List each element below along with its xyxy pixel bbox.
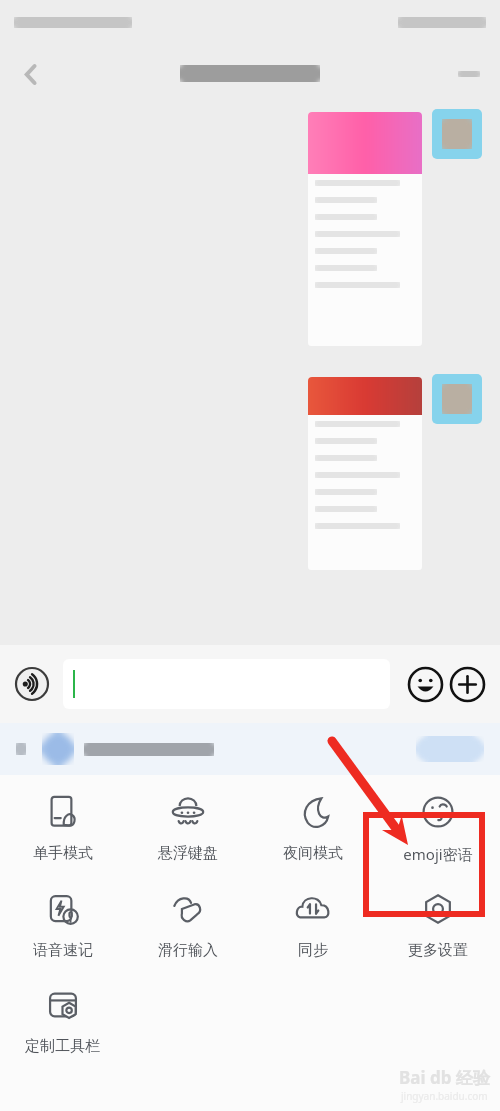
button[interactable]: 定制工具栏 bbox=[0, 982, 125, 1060]
button[interactable]: 单手模式 bbox=[0, 789, 125, 867]
staticText: Bai db 经验 bbox=[399, 1066, 490, 1089]
button[interactable] bbox=[63, 659, 390, 709]
staticText: 语音速记 bbox=[33, 941, 93, 960]
staticText: 悬浮键盘 bbox=[158, 844, 218, 863]
staticText: 单手模式 bbox=[33, 844, 93, 863]
staticText: 同步 bbox=[298, 941, 328, 960]
button[interactable]: 悬浮键盘 bbox=[125, 789, 250, 867]
button[interactable]: More bbox=[452, 57, 486, 91]
button[interactable] bbox=[0, 723, 500, 775]
button[interactable]: 同步 bbox=[250, 886, 375, 964]
button[interactable]: Voice input bbox=[14, 666, 50, 702]
button[interactable]: 更多设置 bbox=[375, 886, 500, 964]
button[interactable]: 滑行输入 bbox=[125, 886, 250, 964]
staticText: 定制工具栏 bbox=[25, 1037, 100, 1056]
button[interactable]: 语音速记 bbox=[0, 886, 125, 964]
button[interactable] bbox=[432, 109, 482, 159]
button[interactable]: emoji密语 bbox=[375, 789, 500, 868]
staticText: emoji密语 bbox=[403, 844, 473, 864]
button[interactable] bbox=[308, 377, 422, 570]
button[interactable]: 夜间模式 bbox=[250, 789, 375, 867]
button[interactable]: More options bbox=[448, 665, 486, 703]
staticText: 夜间模式 bbox=[283, 844, 343, 863]
staticText: 更多设置 bbox=[408, 941, 468, 960]
staticText: 滑行输入 bbox=[158, 941, 218, 960]
button[interactable] bbox=[308, 112, 422, 346]
button[interactable]: Emoji bbox=[406, 665, 444, 703]
staticText: jingyan.baidu.com bbox=[401, 1089, 488, 1103]
button[interactable] bbox=[432, 374, 482, 424]
button[interactable]: Back bbox=[14, 57, 48, 91]
